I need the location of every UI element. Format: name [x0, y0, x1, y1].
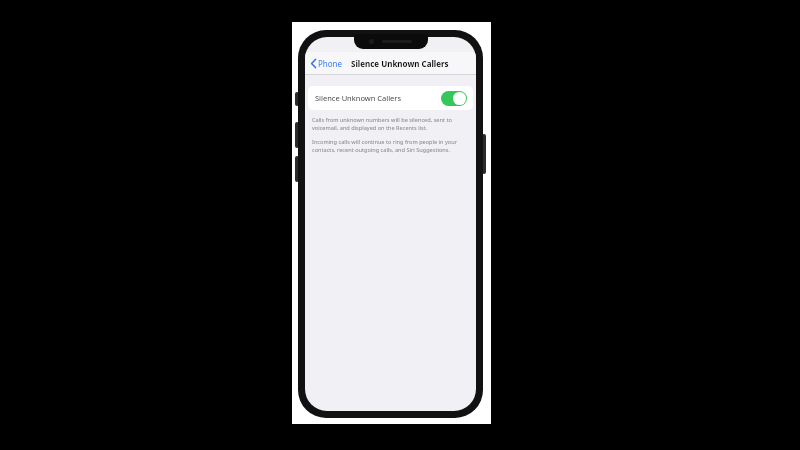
button[interactable]: Silence Unknown Callers toggle [441, 91, 467, 106]
staticText: Phone [318, 58, 343, 69]
staticText: Calls from unknown numbers will be silen… [312, 116, 469, 132]
staticText: Silence Unknown Callers [315, 93, 441, 103]
button[interactable]: Silence Unknown Callers [308, 86, 473, 110]
button[interactable]: Phone [309, 55, 345, 72]
staticText: Silence Unknown Callers [351, 58, 449, 69]
staticText: Incoming calls will continue to ring fro… [312, 138, 469, 154]
